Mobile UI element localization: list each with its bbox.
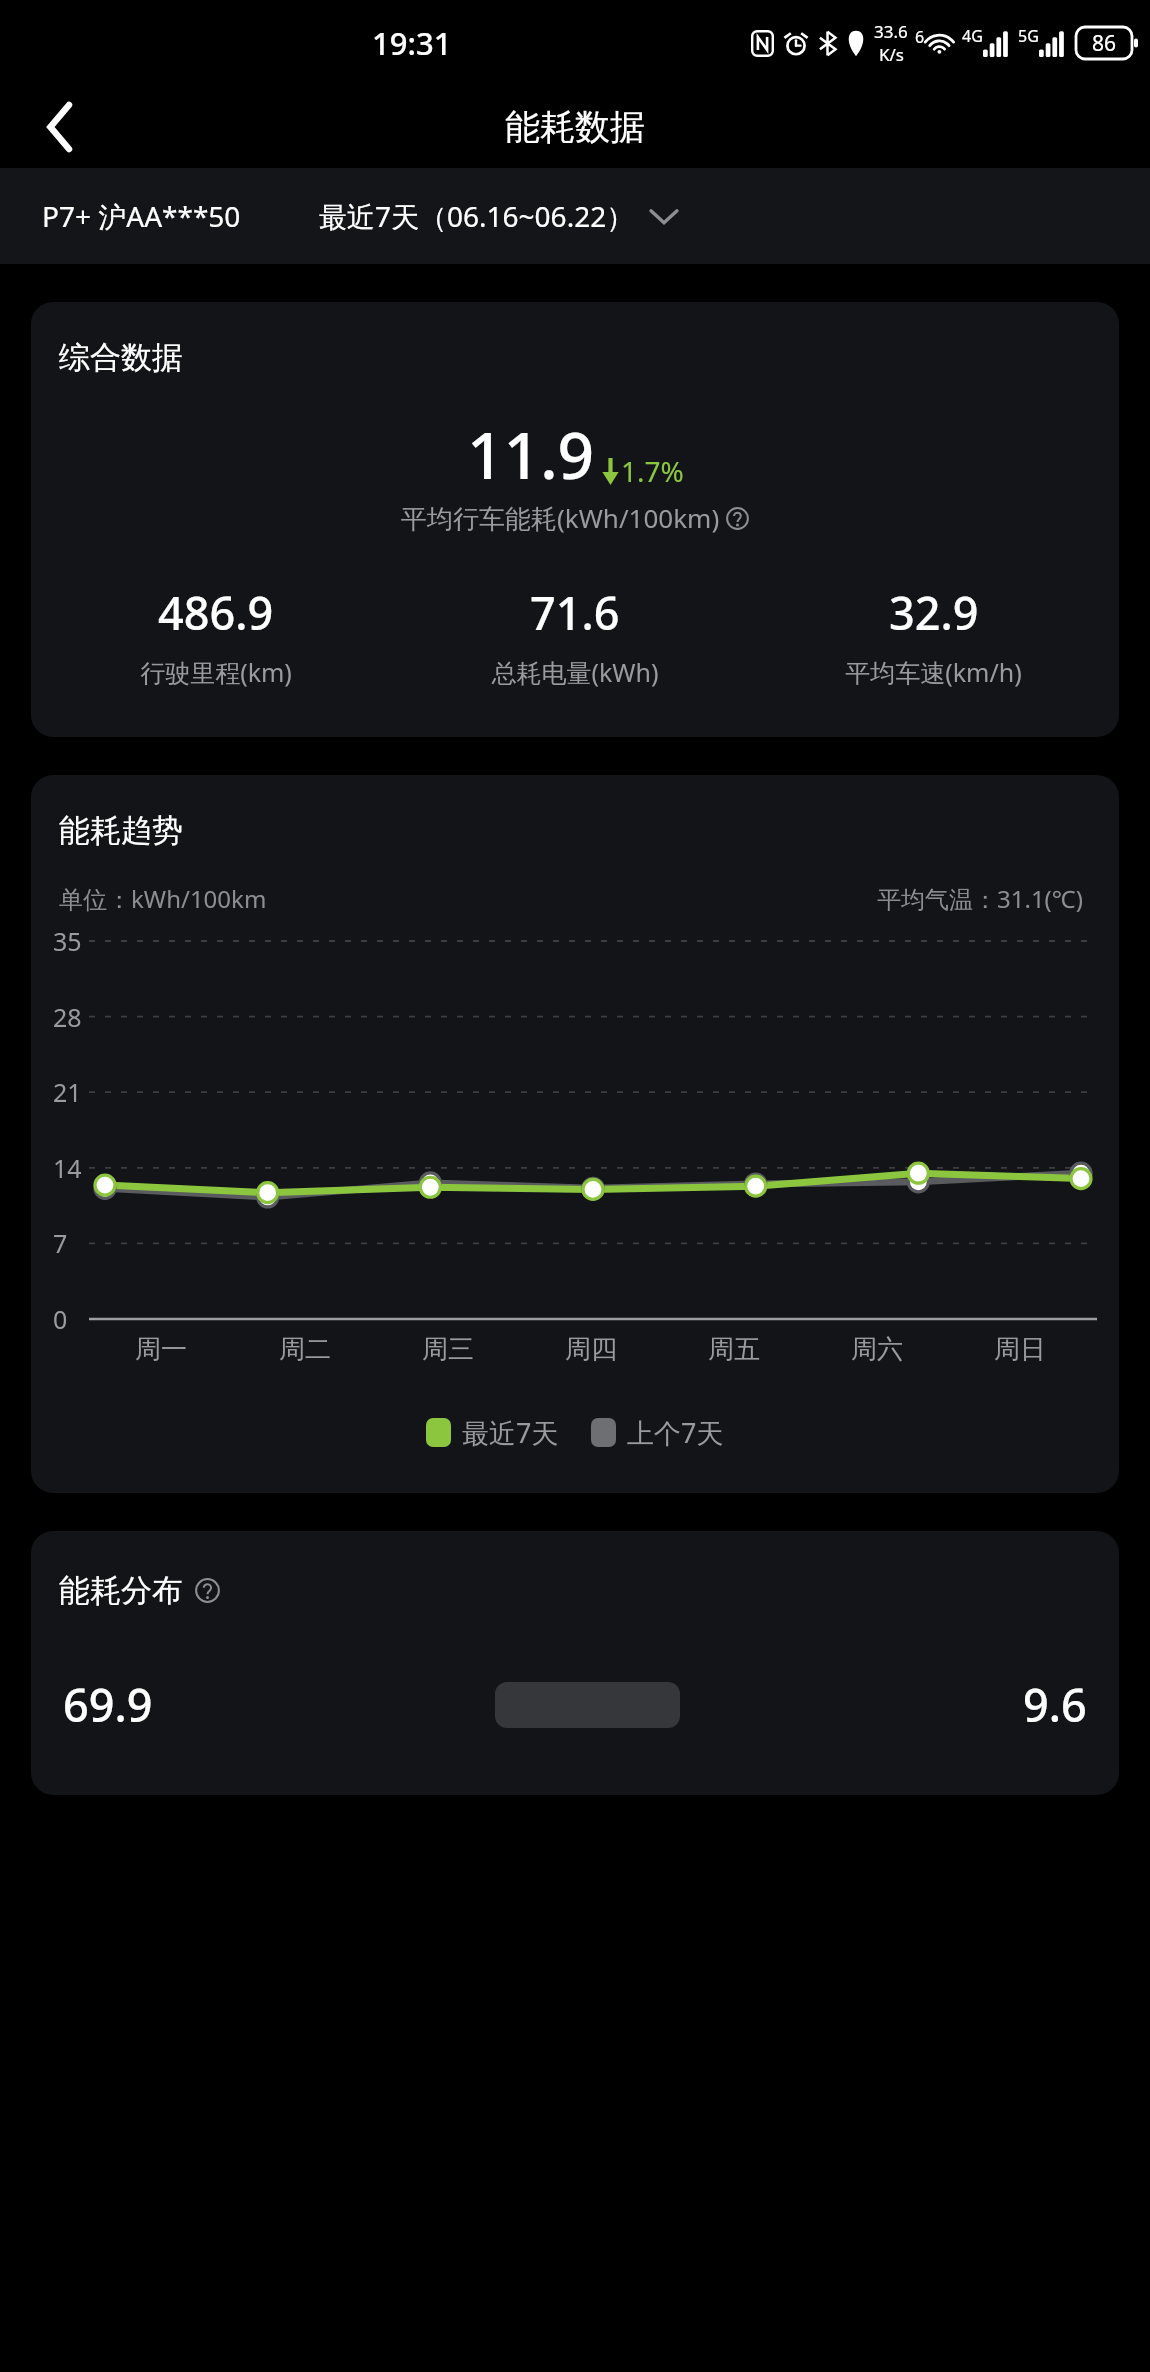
staticText: 21: [53, 1075, 82, 1109]
staticText: 行驶里程(km): [140, 655, 292, 689]
staticText: 0: [53, 1302, 68, 1336]
staticText: K/s: [879, 43, 904, 66]
staticText: 1.7%: [621, 452, 684, 490]
staticText: 平均行车能耗(kWh/100km): [401, 500, 720, 536]
staticText: 能耗趋势: [59, 811, 183, 850]
staticText: 平均气温：31.1(℃): [877, 882, 1083, 915]
staticText: 14: [53, 1151, 82, 1185]
staticText: 能耗分布: [59, 1571, 183, 1610]
staticText: 周五: [708, 1333, 760, 1366]
staticText: 7: [53, 1226, 68, 1260]
staticText: P7+ 沪AA***50: [42, 197, 241, 235]
staticText: 周六: [851, 1333, 903, 1366]
staticText: 平均车速(km/h): [845, 655, 1022, 689]
staticText: 11.9: [467, 411, 595, 498]
staticText: 9.6: [1023, 1674, 1087, 1735]
staticText: 19:31: [372, 22, 452, 64]
staticText: 6: [915, 26, 925, 48]
staticText: 上个7天: [627, 1414, 724, 1451]
staticText: 周一: [135, 1333, 187, 1366]
staticText: 28: [53, 1000, 82, 1034]
staticText: 周二: [279, 1333, 331, 1366]
staticText: 69.9: [63, 1674, 153, 1735]
staticText: 5G: [1018, 25, 1039, 47]
staticText: 综合数据: [59, 338, 183, 377]
staticText: 486.9: [158, 582, 274, 643]
staticText: 最近7天（06.16~06.22）: [319, 197, 635, 235]
button[interactable]: Back: [24, 91, 96, 163]
staticText: 86: [1092, 29, 1117, 58]
staticText: 周日: [994, 1333, 1046, 1366]
staticText: 33.6: [874, 20, 908, 43]
staticText: 4G: [962, 25, 983, 47]
staticText: 71.6: [530, 582, 620, 643]
staticText: 最近7天: [462, 1414, 559, 1451]
staticText: 周四: [565, 1333, 617, 1366]
staticText: 单位：kWh/100km: [59, 882, 267, 915]
staticText: 周三: [422, 1333, 474, 1366]
staticText: 32.9: [889, 582, 979, 643]
staticText: 能耗数据: [505, 105, 645, 149]
staticText: 总耗电量(kWh): [491, 655, 659, 689]
staticText: 35: [53, 924, 82, 958]
button[interactable]: P7+ 沪AA***50: [0, 168, 1150, 264]
